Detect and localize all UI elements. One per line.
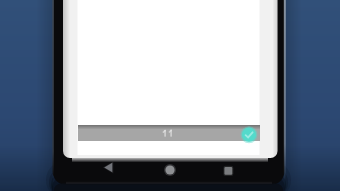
button[interactable] bbox=[159, 159, 181, 181]
button[interactable] bbox=[98, 157, 120, 179]
button[interactable] bbox=[240, 126, 258, 144]
button[interactable] bbox=[78, 125, 260, 141]
button[interactable] bbox=[217, 160, 239, 182]
